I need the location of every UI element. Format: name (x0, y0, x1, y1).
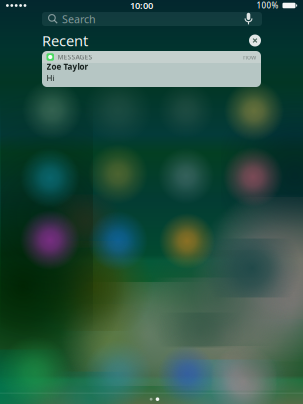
staticText: Hi (46, 73, 54, 84)
button[interactable]: Search (42, 12, 262, 26)
staticText: 100% (256, 0, 278, 11)
staticText: Recent (42, 31, 88, 50)
staticText: now (243, 53, 256, 61)
staticText: Zoe Taylor (46, 61, 88, 72)
staticText: 10:00 (130, 0, 153, 12)
staticText: MESSAGES (57, 53, 92, 61)
staticText: Search (62, 12, 96, 26)
button[interactable]: Clear recents (249, 34, 261, 46)
button[interactable]: MESSAGES (42, 51, 261, 87)
